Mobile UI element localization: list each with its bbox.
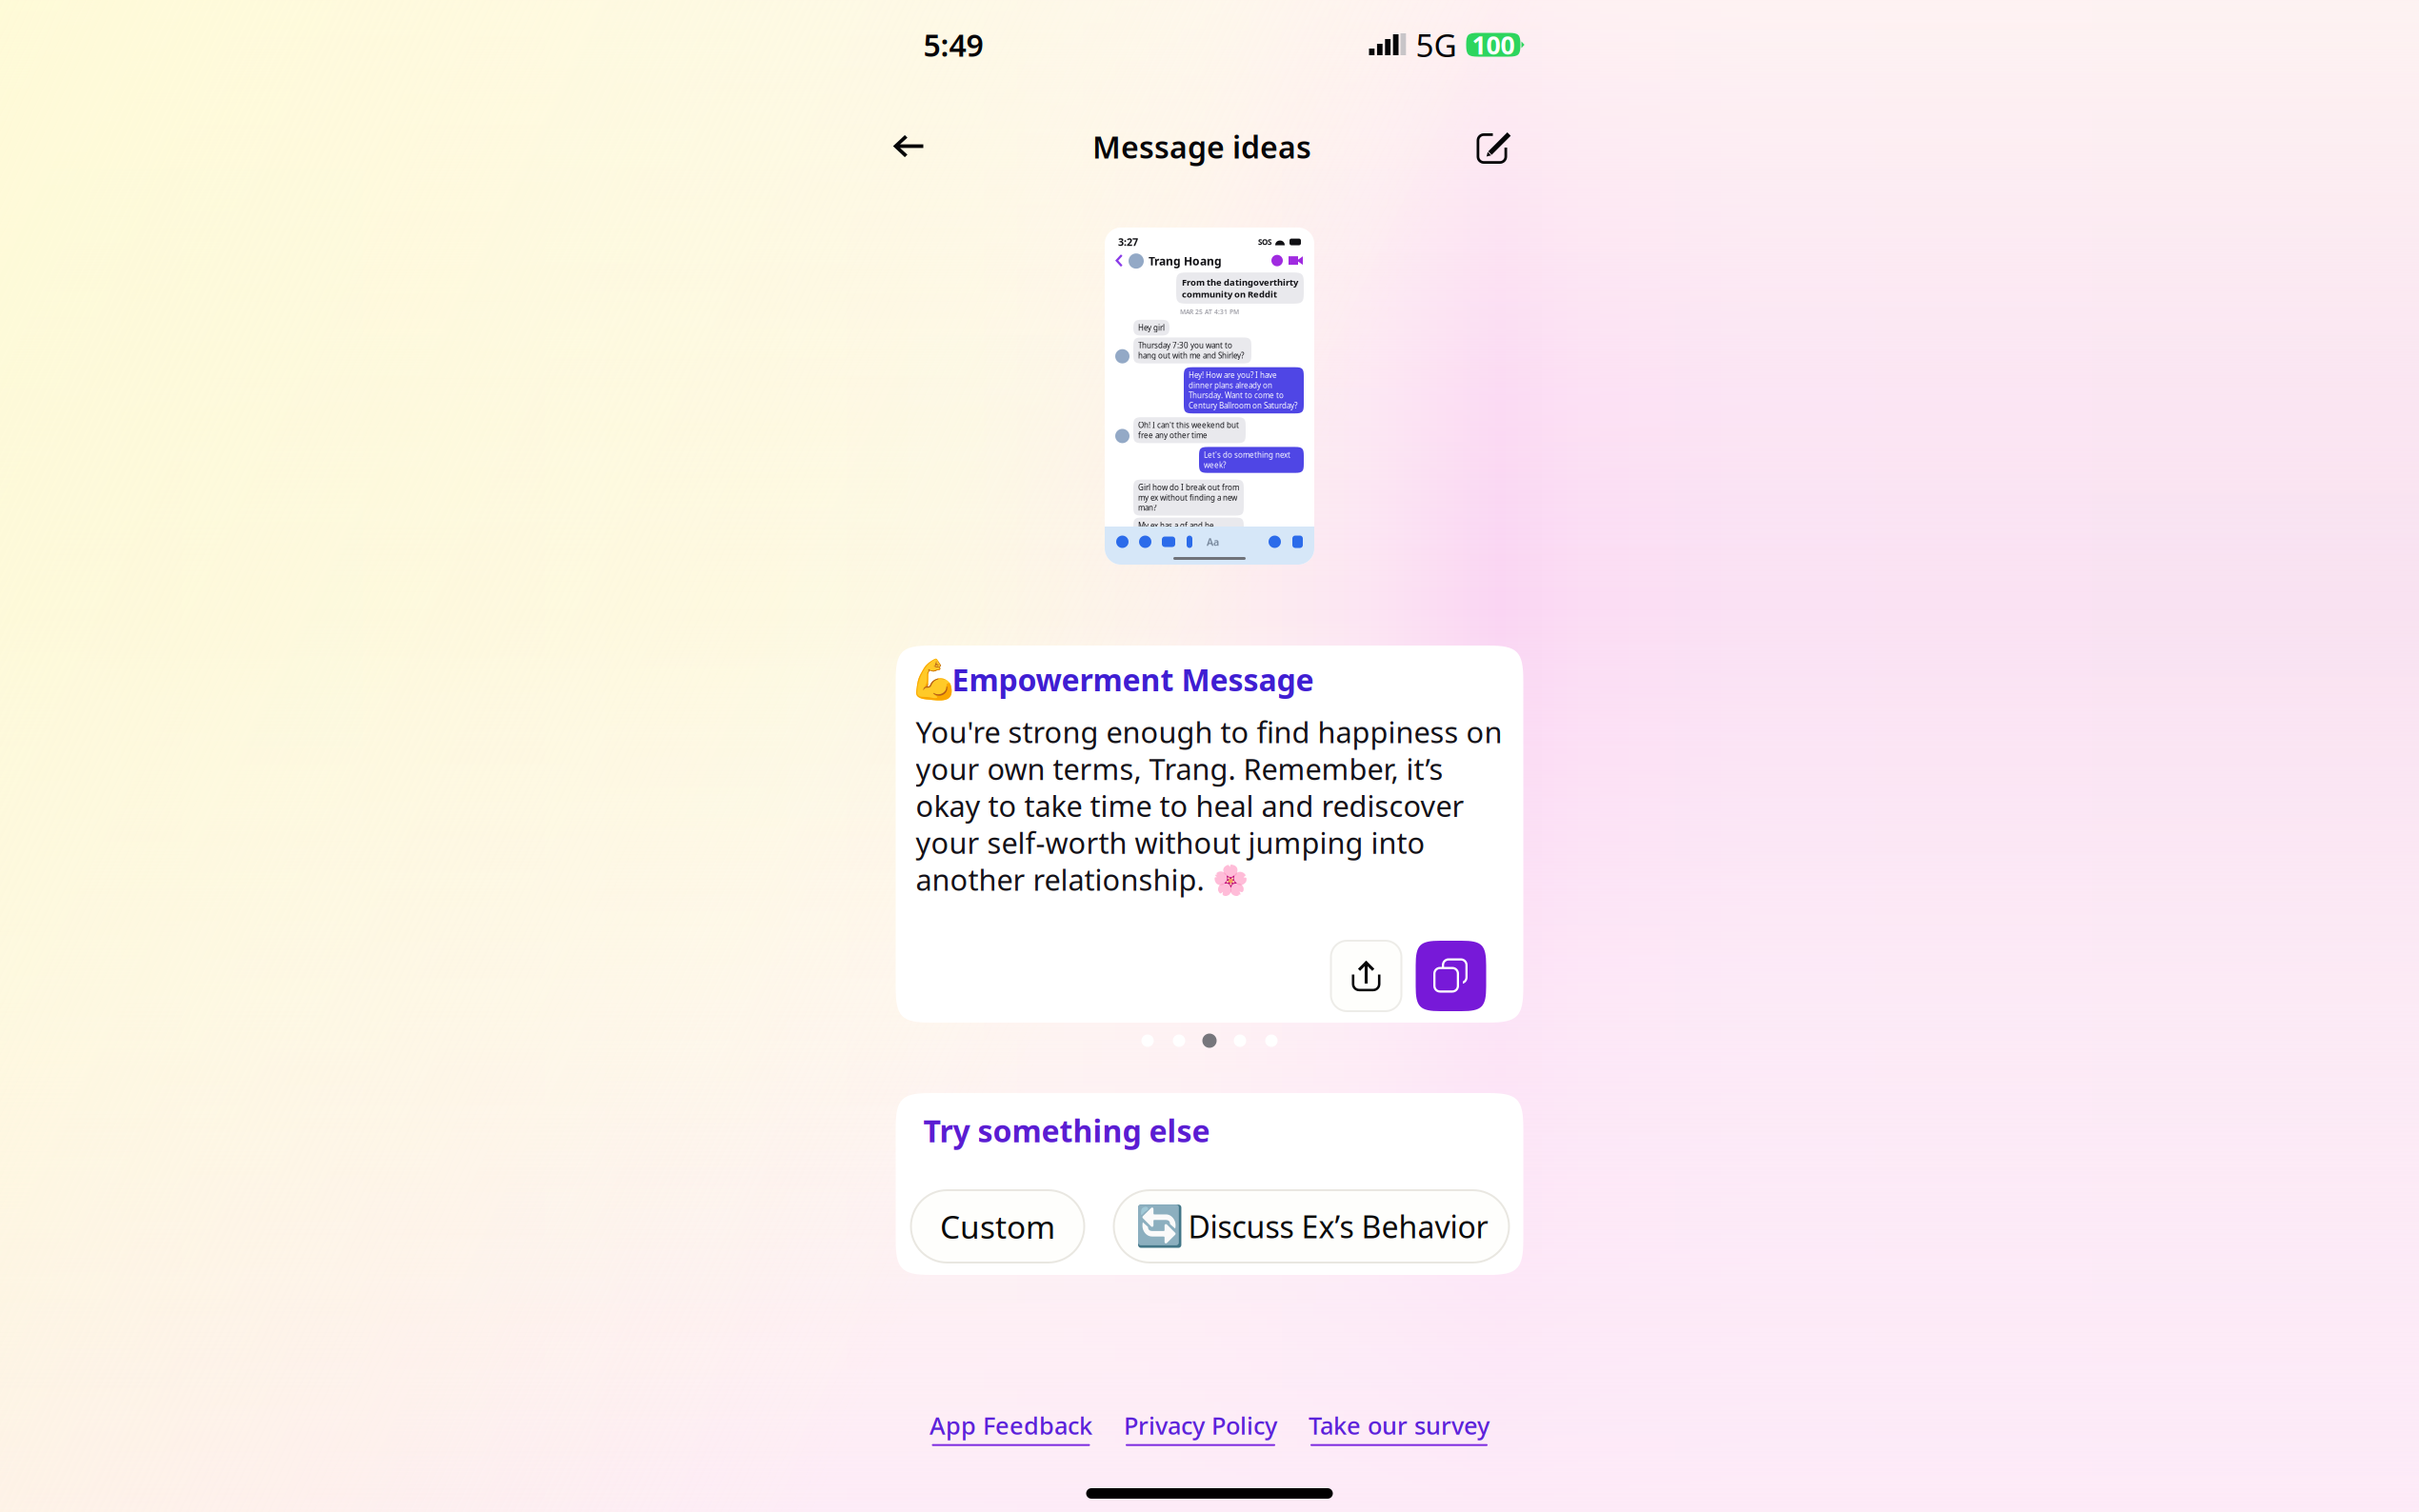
staticText: Try something else (923, 1110, 1210, 1151)
staticText: 5G (1416, 24, 1457, 66)
button[interactable]: Take our survey (1309, 1409, 1489, 1446)
staticText: Hey! How are you? I have dinner plans al… (1189, 370, 1297, 411)
staticText: MAR 25 AT 4:31 PM (1180, 308, 1239, 316)
staticText: Empowerment Message (952, 659, 1314, 700)
staticText: You're strong enough to find happiness o… (916, 712, 1502, 899)
button[interactable]: 🔄 (1114, 1190, 1509, 1263)
staticText: Hey girl (1138, 323, 1165, 333)
staticText: Privacy Policy (1124, 1409, 1277, 1441)
staticText: App Feedback (930, 1409, 1092, 1441)
button[interactable]: Custom (911, 1190, 1084, 1263)
staticText: My ex has a gf and he uninvited me to an… (1138, 520, 1221, 551)
staticText: Message ideas (1092, 126, 1311, 167)
staticText: Oh! I can't this weekend but free any ot… (1138, 420, 1239, 440)
button[interactable]: Share (1331, 941, 1401, 1011)
staticText: Girl how do I break out from my ex witho… (1138, 482, 1239, 513)
staticText: 5:49 (923, 25, 983, 65)
staticText: 100 (1472, 28, 1515, 62)
staticText: Custom (940, 1205, 1055, 1247)
staticText: 💪 (909, 657, 958, 702)
button[interactable]: Privacy Policy (1124, 1409, 1277, 1446)
staticText: Aa (1207, 535, 1219, 549)
staticText: Take our survey (1309, 1409, 1489, 1441)
button[interactable]: Back (875, 112, 943, 181)
button[interactable]: Copy (1416, 941, 1486, 1011)
button[interactable]: New message (1460, 112, 1529, 181)
staticText: Let's do something next week? (1204, 450, 1290, 470)
staticText: Discuss Ex’s Behavior (1188, 1206, 1488, 1247)
staticText: Trang Hoang (1149, 253, 1222, 269)
button[interactable]: App Feedback (930, 1409, 1092, 1446)
staticText: 3:27 (1118, 235, 1138, 249)
staticText: Thursday 7:30 you want to hang out with … (1138, 340, 1244, 360)
staticText: 🔄 (1135, 1204, 1183, 1249)
staticText: SOS (1258, 237, 1271, 247)
staticText: From the datingoverthirty community on R… (1182, 276, 1298, 300)
